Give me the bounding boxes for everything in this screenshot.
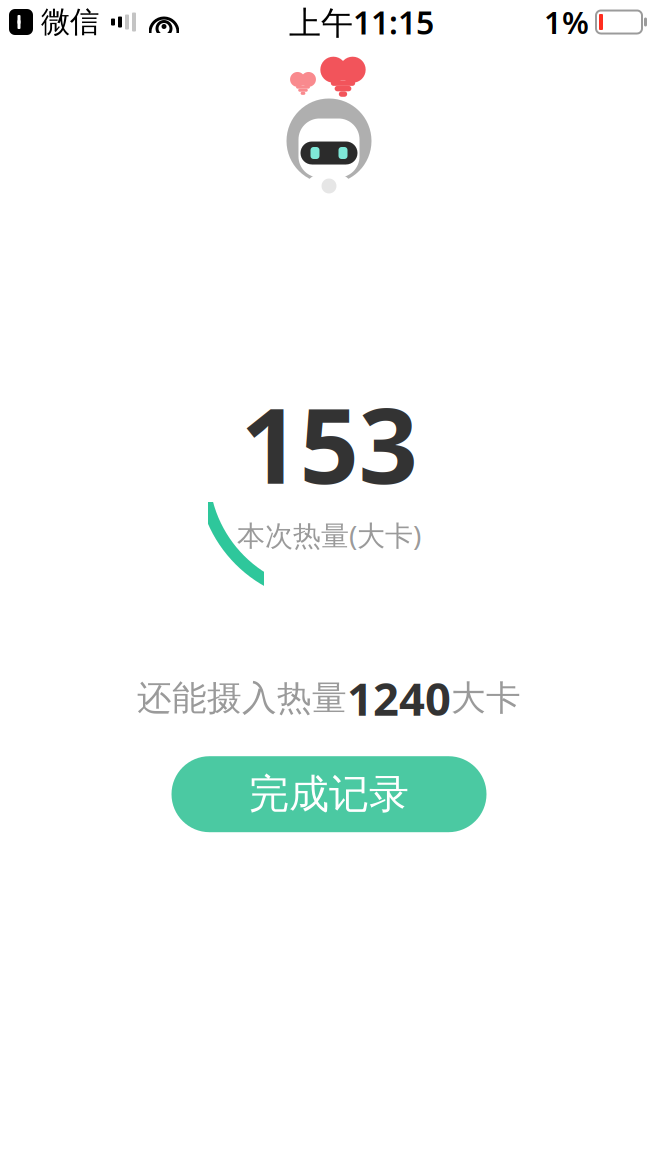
- button[interactable]: 返回微信: [9, 4, 99, 40]
- staticText: 1%: [544, 2, 589, 42]
- staticText: 153: [240, 374, 417, 512]
- staticText: 上午11:15: [289, 1, 434, 43]
- staticText: 本次热量(大卡): [237, 516, 421, 554]
- staticText: 微信: [41, 4, 99, 40]
- staticText: 大卡: [451, 677, 521, 719]
- button[interactable]: 完成记录: [171, 756, 486, 832]
- staticText: 还能摄入热量: [137, 677, 347, 719]
- staticText: 1240: [347, 668, 451, 728]
- staticText: 完成记录: [249, 770, 409, 819]
